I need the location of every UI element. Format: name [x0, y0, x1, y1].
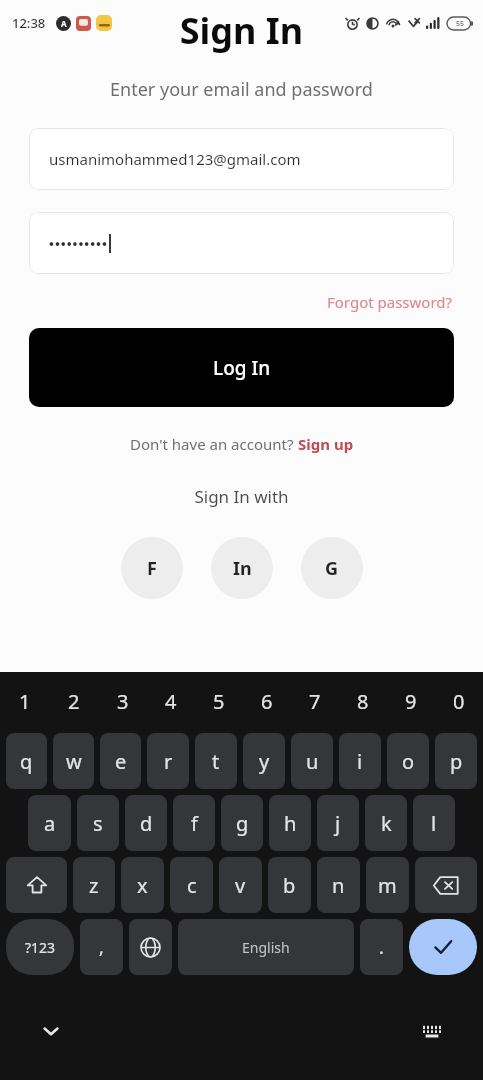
staticText: f: [191, 810, 198, 837]
staticText: English: [242, 938, 290, 957]
staticText: 2: [68, 688, 80, 715]
button[interactable]: p: [435, 733, 477, 789]
button[interactable]: x: [121, 857, 164, 913]
button[interactable]: Backspace: [415, 857, 477, 913]
staticText: 55: [456, 19, 465, 29]
staticText: y: [259, 748, 270, 775]
button[interactable]: Don't have an account?: [0, 434, 483, 454]
staticText: u: [306, 748, 319, 775]
staticText: n: [332, 872, 345, 899]
button[interactable]: 1: [0, 672, 49, 730]
staticText: w: [66, 748, 82, 775]
button[interactable]: b: [268, 857, 311, 913]
button[interactable]: y: [243, 733, 285, 789]
staticText: ••••••••••: [49, 235, 108, 253]
staticText: Sign In with: [0, 485, 483, 508]
staticText: i: [357, 748, 363, 775]
button[interactable]: k: [365, 795, 407, 851]
staticText: Log In: [213, 355, 271, 381]
button[interactable]: Switch keyboard: [415, 1014, 449, 1048]
staticText: q: [20, 748, 33, 775]
button[interactable]: 2: [49, 672, 98, 730]
staticText: m: [378, 872, 397, 899]
button[interactable]: Hide keyboard: [34, 1014, 68, 1048]
button[interactable]: Enter: [409, 919, 477, 975]
button[interactable]: n: [317, 857, 360, 913]
button[interactable]: r: [147, 733, 189, 789]
staticText: ,: [99, 935, 104, 960]
staticText: usmanimohammed123@gmail.com: [49, 149, 301, 169]
staticText: z: [89, 872, 99, 899]
button[interactable]: q: [6, 733, 47, 789]
staticText: G: [325, 556, 339, 581]
button[interactable]: 5: [195, 672, 243, 730]
button[interactable]: Sign in with G: [301, 537, 363, 599]
staticText: 1: [19, 688, 31, 715]
button[interactable]: 6: [243, 672, 291, 730]
staticText: 5: [213, 688, 225, 715]
button[interactable]: 4: [147, 672, 195, 730]
button[interactable]: Change language: [129, 919, 172, 975]
button[interactable]: m: [366, 857, 409, 913]
button[interactable]: z: [73, 857, 115, 913]
button[interactable]: 7: [291, 672, 339, 730]
button[interactable]: a: [28, 795, 71, 851]
button[interactable]: 8: [339, 672, 387, 730]
button[interactable]: ,: [80, 919, 123, 975]
staticText: 8: [357, 688, 369, 715]
staticText: k: [381, 810, 392, 837]
button[interactable]: j: [317, 795, 359, 851]
staticText: Enter your email and password: [0, 77, 483, 102]
staticText: 3: [117, 688, 129, 715]
staticText: 0: [453, 688, 465, 715]
staticText: a: [44, 810, 56, 837]
button[interactable]: w: [53, 733, 94, 789]
button[interactable]: o: [387, 733, 429, 789]
button[interactable]: 9: [387, 672, 435, 730]
button[interactable]: ••••••••••: [29, 212, 454, 274]
button[interactable]: ?123: [6, 919, 74, 975]
staticText: r: [164, 748, 173, 775]
staticText: 12:38: [12, 14, 46, 32]
button[interactable]: v: [219, 857, 262, 913]
staticText: 4: [165, 688, 177, 715]
button[interactable]: Shift: [6, 857, 67, 913]
button[interactable]: t: [195, 733, 237, 789]
staticText: g: [236, 810, 249, 837]
button[interactable]: h: [269, 795, 311, 851]
button[interactable]: u: [291, 733, 333, 789]
button[interactable]: g: [221, 795, 263, 851]
staticText: Don't have an account?: [130, 434, 298, 454]
staticText: v: [235, 872, 246, 899]
button[interactable]: 3: [98, 672, 147, 730]
staticText: t: [212, 748, 220, 775]
button[interactable]: s: [77, 795, 119, 851]
button[interactable]: .: [360, 919, 403, 975]
button[interactable]: English: [178, 919, 354, 975]
button[interactable]: Sign in with In: [211, 537, 273, 599]
staticText: Sign In: [0, 6, 483, 55]
button[interactable]: Forgot password?: [323, 288, 457, 316]
staticText: .: [379, 935, 384, 960]
button[interactable]: Sign in with F: [121, 537, 183, 599]
button[interactable]: i: [339, 733, 381, 789]
staticText: b: [283, 872, 296, 899]
staticText: s: [93, 810, 103, 837]
button[interactable]: l: [413, 795, 455, 851]
button[interactable]: usmanimohammed123@gmail.com: [29, 128, 454, 190]
button[interactable]: f: [173, 795, 215, 851]
button[interactable]: Log In: [29, 328, 454, 407]
staticText: p: [450, 748, 463, 775]
staticText: F: [147, 556, 157, 581]
staticText: In: [233, 556, 252, 581]
staticText: c: [187, 872, 197, 899]
button[interactable]: 0: [435, 672, 483, 730]
button[interactable]: c: [170, 857, 213, 913]
button[interactable]: d: [125, 795, 167, 851]
staticText: 7: [309, 688, 321, 715]
staticText: e: [115, 748, 127, 775]
button[interactable]: e: [100, 733, 141, 789]
staticText: x: [137, 872, 148, 899]
staticText: o: [402, 748, 415, 775]
staticText: d: [140, 810, 153, 837]
